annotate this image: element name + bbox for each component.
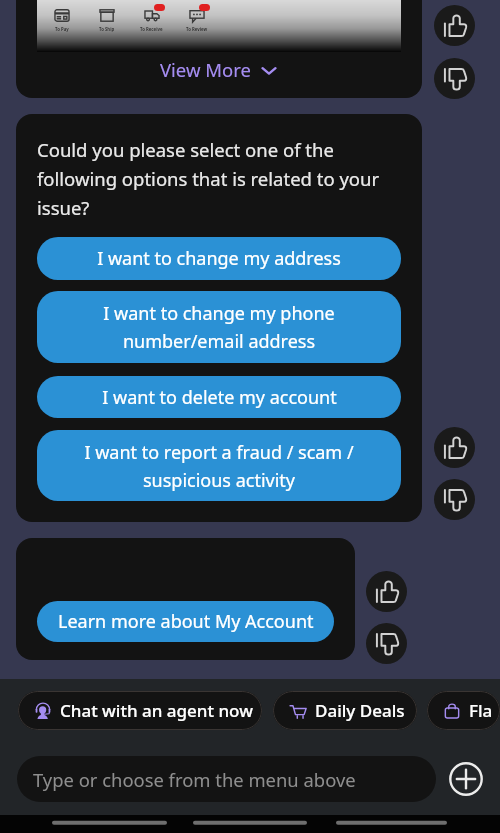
button[interactable]: Type or choose from the menu above	[17, 756, 436, 802]
staticText: To Receive	[140, 26, 163, 32]
button[interactable]: To Pay	[16, 0, 422, 98]
staticText: Learn more about My Account	[58, 609, 314, 634]
staticText: Flash Sale	[469, 699, 500, 722]
button[interactable]: Flash Sale	[427, 691, 500, 730]
staticText: Chat with an agent now	[60, 699, 253, 722]
button[interactable]: Thumbs up	[434, 427, 475, 468]
button[interactable]: To Ship	[84, 8, 129, 32]
button[interactable]: Daily Deals	[273, 691, 417, 730]
button[interactable]: Add attachment	[449, 762, 483, 796]
staticText: I want to report a fraud / scam / suspic…	[84, 440, 354, 492]
button[interactable]: To Pay	[39, 8, 84, 32]
staticText: View More	[160, 57, 251, 82]
button[interactable]: Thumbs up	[366, 571, 407, 612]
button[interactable]: Thumbs up	[434, 5, 475, 46]
button[interactable]: I want to change my phone number/email a…	[37, 291, 401, 363]
staticText: To Review	[186, 26, 208, 32]
button[interactable]: Thumbs down	[366, 623, 407, 664]
button[interactable]: I want to change my address	[37, 237, 401, 280]
staticText: I want to delete my account	[102, 385, 337, 410]
button[interactable]: Chat with an agent now	[18, 691, 262, 730]
button[interactable]: I want to report a fraud / scam / suspic…	[37, 430, 401, 501]
button[interactable]: Thumbs down	[434, 479, 475, 520]
staticText: Could you please select one of the follo…	[37, 137, 401, 220]
button[interactable]: I want to delete my account	[37, 376, 401, 418]
button[interactable]: To Review	[174, 8, 219, 32]
button[interactable]: To Receive	[129, 8, 174, 32]
staticText: Daily Deals	[315, 699, 405, 722]
button[interactable]: Learn more about My Account	[37, 601, 334, 642]
button[interactable]: View More	[160, 57, 278, 82]
staticText: I want to change my phone number/email a…	[103, 301, 335, 353]
button[interactable]: Thumbs down	[434, 58, 475, 99]
staticText: To Ship	[99, 26, 115, 32]
staticText: To Pay	[55, 26, 69, 32]
staticText: I want to change my address	[97, 246, 341, 271]
staticText: Type or choose from the menu above	[33, 767, 356, 792]
